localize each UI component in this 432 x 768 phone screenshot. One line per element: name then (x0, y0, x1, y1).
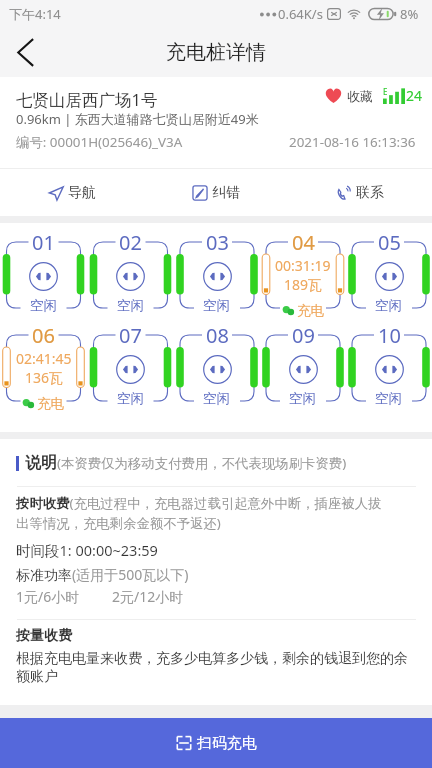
staticText: 空闲 (375, 297, 403, 314)
button[interactable]: 07 (87, 316, 174, 409)
staticText: 标准功率(适用于500瓦以下) (16, 565, 189, 584)
button[interactable]: 02 (87, 223, 174, 316)
staticText: 时间段1: 00:00~23:59 (16, 540, 158, 560)
staticText: 空闲 (30, 297, 58, 314)
staticText: 01 (32, 229, 55, 256)
staticText: 0.64K/s (278, 5, 323, 23)
button[interactable]: 联系 (288, 169, 432, 216)
staticText: 导航 (68, 184, 96, 202)
staticText: 空闲 (375, 390, 403, 407)
button[interactable]: 09 (260, 316, 346, 409)
staticText: 136瓦 (25, 368, 64, 387)
button[interactable]: 08 (174, 316, 260, 409)
staticText: 02 (119, 229, 142, 256)
staticText: 空闲 (203, 297, 231, 314)
staticText: 七贤山居西广场1号 (16, 88, 158, 111)
staticText: 扫码充电 (197, 734, 257, 753)
staticText: 空闲 (117, 390, 145, 407)
staticText: 24 (406, 86, 423, 105)
staticText: 联系 (356, 184, 384, 202)
staticText: 空闲 (203, 390, 231, 407)
staticText: 07 (119, 322, 142, 349)
button[interactable]: Back (0, 28, 49, 77)
staticText: 空闲 (289, 390, 317, 407)
staticText: 收藏 (347, 88, 373, 104)
button[interactable]: 03 (174, 223, 260, 316)
staticText: 说明(本资费仅为移动支付费用，不代表现场刷卡资费) (25, 453, 347, 473)
staticText: 充电 (297, 302, 325, 319)
staticText: 0.96km | 东西大道辅路七贤山居附近49米 (16, 110, 259, 128)
staticText: E (383, 86, 388, 97)
staticText: 8% (400, 5, 419, 23)
staticText: 按量收费 (16, 627, 72, 645)
staticText: 06 (32, 322, 55, 349)
button[interactable]: 06 (0, 316, 87, 409)
button[interactable]: 纠错 (144, 169, 288, 216)
staticText: 编号: 00001H(025646)_V3A (16, 133, 183, 151)
staticText: 08 (206, 322, 229, 349)
staticText: 纠错 (212, 184, 240, 202)
staticText: 03 (206, 229, 229, 256)
staticText: 09 (292, 322, 315, 349)
staticText: 00:31:19 (275, 256, 331, 275)
staticText: 02:41:45 (16, 349, 72, 368)
button[interactable]: 01 (0, 223, 87, 316)
staticText: 2元/12小时 (112, 587, 184, 606)
button[interactable]: 导航 (0, 169, 144, 216)
button[interactable]: 扫码充电 (0, 718, 432, 768)
staticText: 空闲 (117, 297, 145, 314)
staticText: 05 (378, 229, 401, 256)
staticText: 充电桩详情 (166, 40, 266, 65)
staticText: 根据充电电量来收费，充多少电算多少钱，剩余的钱退到您的余 额账户 (16, 650, 417, 686)
staticText: 10 (378, 322, 401, 349)
staticText: 充电 (37, 395, 65, 412)
button[interactable]: 05 (346, 223, 432, 316)
staticText: 189瓦 (284, 275, 323, 294)
staticText: 04 (292, 229, 315, 256)
button[interactable]: 10 (346, 316, 432, 409)
staticText: 1元/6小时 (16, 587, 80, 606)
button[interactable]: 收藏 (324, 87, 373, 104)
staticText: 下午4:14 (9, 5, 61, 23)
button[interactable]: 04 (260, 223, 346, 316)
staticText: 2021-08-16 16:13:36 (289, 133, 416, 151)
staticText: 按时收费(充电过程中，充电器过载引起意外中断，插座被人拔 出等情况，充电剩余金额… (16, 494, 417, 532)
